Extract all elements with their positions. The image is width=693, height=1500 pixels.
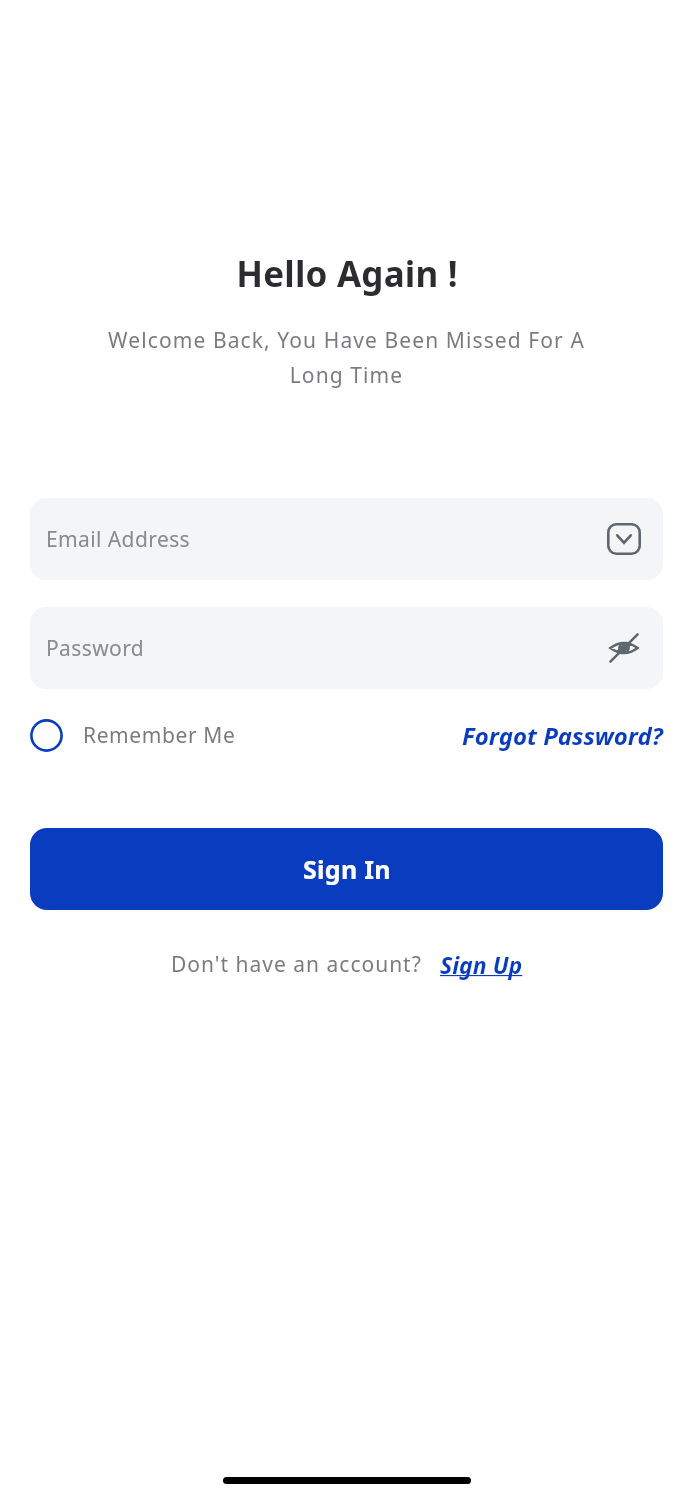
staticText: Remember Me <box>83 721 236 750</box>
other: Show password <box>607 631 641 665</box>
staticText: Forgot Password? <box>462 719 663 752</box>
button[interactable]: Email Address <box>30 498 663 580</box>
button[interactable]: Remember Me <box>30 719 240 752</box>
staticText: Sign In <box>303 852 391 886</box>
staticText: Hello Again ! <box>236 250 458 298</box>
staticText: Don't have an account? <box>171 950 422 979</box>
staticText: Password <box>46 634 145 663</box>
button[interactable]: Sign Up <box>440 949 523 980</box>
button[interactable]: Sign In <box>30 828 663 910</box>
button[interactable]: Forgot Password? <box>462 719 663 752</box>
staticText: Welcome Back, You Have Been Missed For A… <box>80 326 613 389</box>
other: Email <box>607 522 641 556</box>
staticText: Sign Up <box>440 949 523 980</box>
button[interactable]: Password <box>30 607 663 689</box>
staticText: Email Address <box>46 525 191 554</box>
